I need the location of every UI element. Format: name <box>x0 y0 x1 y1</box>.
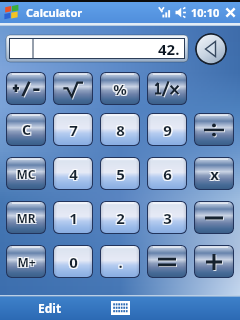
button[interactable]: 8 <box>100 113 140 146</box>
button[interactable]: x <box>194 157 234 190</box>
button[interactable]: % <box>100 72 140 105</box>
staticText: 1 <box>69 208 78 228</box>
staticText: 8 <box>116 120 125 140</box>
staticText: 0 <box>68 253 77 273</box>
staticText: C <box>23 119 32 138</box>
staticText: C <box>23 121 32 140</box>
staticText: 4 <box>69 164 78 184</box>
staticText: 3 <box>162 207 171 227</box>
button[interactable]: MC <box>6 157 46 190</box>
button[interactable]: Start <box>2 2 22 22</box>
staticText: 5 <box>116 164 125 184</box>
button[interactable]: Volume <box>175 6 188 19</box>
staticText: x <box>209 163 218 183</box>
staticText: 9 <box>162 119 171 139</box>
button[interactable]: 0 <box>53 245 93 278</box>
staticText: 2 <box>117 209 126 229</box>
staticText: 3 <box>164 209 173 229</box>
button[interactable] <box>194 245 234 278</box>
button[interactable]: C <box>6 113 46 146</box>
staticText: 1 <box>70 209 79 229</box>
staticText: % <box>114 80 128 100</box>
staticText: 5 <box>117 163 126 183</box>
staticText: 6 <box>164 163 173 183</box>
staticText: 7 <box>68 119 77 139</box>
staticText: 7 <box>70 119 79 139</box>
button[interactable]: 5 <box>100 157 140 190</box>
staticText: 6 <box>164 165 173 185</box>
staticText: M+ <box>17 254 36 270</box>
staticText: 3 <box>162 209 171 229</box>
staticText: % <box>112 80 126 100</box>
button[interactable]: Signal strength <box>158 6 171 19</box>
staticText: 2 <box>116 208 125 228</box>
staticText: C <box>21 121 30 140</box>
staticText: 3 <box>164 207 173 227</box>
staticText: M+ <box>18 253 37 269</box>
button[interactable] <box>147 72 187 105</box>
staticText: 2 <box>117 207 126 227</box>
button[interactable]: 3 <box>147 201 187 234</box>
button[interactable]: MR <box>6 201 46 234</box>
staticText: % <box>112 78 126 98</box>
staticText: MC <box>17 165 37 181</box>
button[interactable] <box>53 72 93 105</box>
staticText: x <box>210 164 219 184</box>
staticText: 7 <box>69 120 78 140</box>
button[interactable]: 1 <box>53 201 93 234</box>
button[interactable]: 9 <box>147 113 187 146</box>
staticText: x <box>211 165 220 185</box>
staticText: 3 <box>163 208 172 228</box>
staticText: Edit <box>38 300 62 316</box>
button[interactable]: 6 <box>147 157 187 190</box>
button[interactable]: Edit <box>0 295 100 320</box>
button[interactable] <box>194 201 234 234</box>
staticText: MR <box>17 211 37 227</box>
staticText: MC <box>15 165 35 181</box>
staticText: 8 <box>115 121 124 141</box>
button[interactable]: 7 <box>53 113 93 146</box>
staticText: M+ <box>16 255 35 271</box>
staticText: 6 <box>162 163 171 183</box>
staticText: MR <box>16 210 36 226</box>
staticText: 2 <box>115 209 124 229</box>
button[interactable]: Backspace <box>195 33 227 65</box>
staticText: C <box>22 120 31 139</box>
button[interactable] <box>6 72 46 105</box>
staticText: . <box>117 251 122 271</box>
button[interactable]: 2 <box>100 201 140 234</box>
staticText: 9 <box>162 121 171 141</box>
staticText: 4 <box>68 163 77 183</box>
staticText: 5 <box>115 163 124 183</box>
staticText: 0 <box>70 253 79 273</box>
button[interactable]: 4 <box>53 157 93 190</box>
staticText: MC <box>16 166 36 182</box>
staticText: 9 <box>164 121 173 141</box>
staticText: 1 <box>68 209 77 229</box>
staticText: 0 <box>70 251 79 271</box>
staticText: 0 <box>69 252 78 272</box>
staticText: % <box>113 79 127 99</box>
staticText: 7 <box>70 121 79 141</box>
button[interactable]: Close <box>224 6 237 19</box>
staticText: 4 <box>68 165 77 185</box>
staticText: C <box>21 119 30 138</box>
staticText: M+ <box>16 253 35 269</box>
staticText: 2 <box>115 207 124 227</box>
staticText: 42. <box>158 39 180 59</box>
staticText: 4 <box>70 165 79 185</box>
staticText: . <box>119 251 124 271</box>
staticText: 0 <box>68 251 77 271</box>
staticText: x <box>209 165 218 185</box>
staticText: 10:10 <box>191 5 220 20</box>
staticText: 9 <box>164 119 173 139</box>
staticText: 8 <box>117 121 126 141</box>
staticText: MC <box>15 167 35 183</box>
button[interactable]: M+ <box>6 245 46 278</box>
button[interactable]: Keyboard <box>100 295 140 320</box>
staticText: MR <box>17 209 37 225</box>
button[interactable] <box>194 113 234 146</box>
button[interactable] <box>147 245 187 278</box>
staticText: 6 <box>163 164 172 184</box>
button[interactable]: . <box>100 245 140 278</box>
